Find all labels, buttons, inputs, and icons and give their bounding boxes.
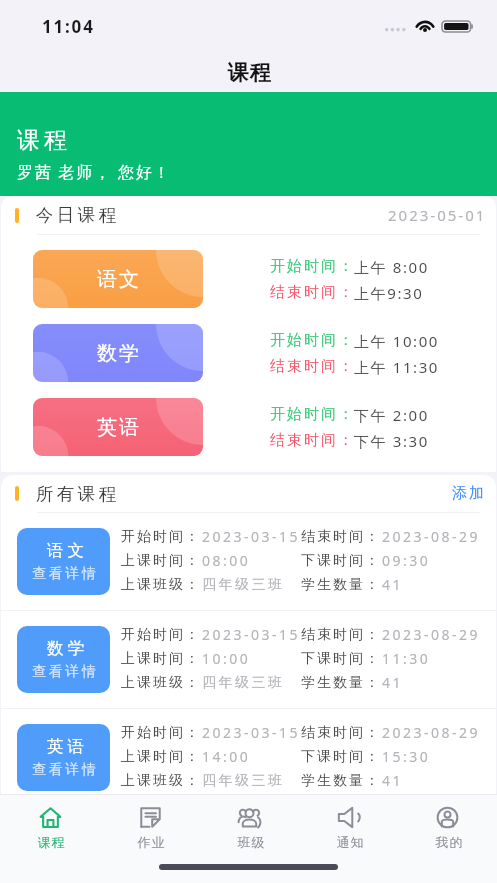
staticText: 结束时间： bbox=[269, 431, 354, 450]
staticText: 下午 2:00 bbox=[354, 405, 429, 425]
staticText: 下午 3:30 bbox=[354, 431, 429, 451]
staticText: 上课班级： bbox=[120, 576, 200, 594]
other: 作业 bbox=[140, 807, 161, 828]
staticText: 上课时间： bbox=[120, 748, 200, 766]
staticText: 开始时间： bbox=[120, 528, 200, 546]
staticText: 添加 bbox=[451, 484, 485, 503]
staticText: 四年级三班 bbox=[202, 772, 285, 790]
button[interactable]: 作业 bbox=[100, 795, 200, 853]
staticText: 上午 10:00 bbox=[354, 331, 440, 351]
staticText: 上课时间： bbox=[120, 650, 200, 668]
staticText: 41 bbox=[382, 673, 404, 692]
button[interactable]: 通知 bbox=[299, 795, 398, 853]
staticText: 开始时间： bbox=[120, 626, 200, 644]
staticText: 结束时间： bbox=[300, 724, 380, 742]
staticText: 08:00 bbox=[202, 551, 251, 570]
other: 班级 bbox=[239, 807, 260, 828]
staticText: 查看详情 bbox=[31, 761, 97, 779]
staticText: 数学 bbox=[96, 341, 140, 366]
staticText: 英语 bbox=[45, 736, 86, 757]
staticText: 10:00 bbox=[202, 649, 251, 668]
staticText: 15:30 bbox=[382, 747, 431, 766]
button[interactable]: 我的 bbox=[398, 795, 497, 853]
staticText: 作业 bbox=[137, 834, 165, 850]
staticText: 上午 11:30 bbox=[354, 357, 440, 377]
staticText: 查看详情 bbox=[31, 663, 97, 681]
button[interactable]: 语文 bbox=[1, 513, 496, 610]
staticText: 上午 8:00 bbox=[354, 257, 429, 277]
staticText: 查看详情 bbox=[31, 565, 97, 583]
staticText: 2023-03-15 bbox=[202, 527, 300, 546]
staticText: 语文 bbox=[96, 267, 140, 292]
staticText: 开始时间： bbox=[269, 405, 354, 424]
staticText: 11:04 bbox=[42, 15, 95, 38]
staticText: 2023-03-15 bbox=[202, 723, 300, 742]
staticText: 英语 bbox=[96, 415, 140, 440]
staticText: 今日课程 bbox=[34, 204, 118, 226]
button[interactable]: 班级 bbox=[200, 795, 299, 853]
staticText: 语文 bbox=[45, 540, 86, 561]
staticText: 上课班级： bbox=[120, 674, 200, 692]
staticText: 下课时间： bbox=[300, 552, 380, 570]
staticText: 开始时间： bbox=[120, 724, 200, 742]
button[interactable]: 数学 bbox=[1, 316, 496, 390]
staticText: 学生数量： bbox=[300, 576, 380, 594]
staticText: 上课时间： bbox=[120, 552, 200, 570]
staticText: 学生数量： bbox=[300, 772, 380, 790]
staticText: 学生数量： bbox=[300, 674, 380, 692]
button[interactable]: 英语 bbox=[1, 709, 496, 794]
staticText: 我的 bbox=[435, 834, 463, 850]
staticText: 结束时间： bbox=[269, 357, 354, 376]
staticText: 所有课程 bbox=[34, 483, 118, 505]
button[interactable]: 添加 bbox=[449, 480, 487, 507]
staticText: 2023-05-01 bbox=[388, 205, 487, 225]
staticText: 2023-08-29 bbox=[382, 527, 481, 546]
staticText: 结束时间： bbox=[300, 626, 380, 644]
staticText: 四年级三班 bbox=[202, 674, 285, 692]
staticText: 班级 bbox=[237, 834, 265, 850]
staticText: 开始时间： bbox=[269, 331, 354, 350]
staticText: 通知 bbox=[336, 834, 364, 850]
staticText: 11:30 bbox=[382, 649, 431, 668]
other: 通知 bbox=[338, 807, 359, 828]
button[interactable]: 数学 bbox=[1, 611, 496, 708]
button[interactable]: 语文 bbox=[1, 242, 496, 316]
other: 我的 bbox=[437, 807, 458, 828]
staticText: 数学 bbox=[45, 638, 86, 659]
staticText: 结束时间： bbox=[300, 528, 380, 546]
staticText: 课程 bbox=[37, 834, 65, 850]
staticText: 下课时间： bbox=[300, 748, 380, 766]
staticText: 14:00 bbox=[202, 747, 251, 766]
staticText: 结束时间： bbox=[269, 283, 354, 302]
staticText: 开始时间： bbox=[269, 257, 354, 276]
staticText: 2023-08-29 bbox=[382, 625, 481, 644]
staticText: 上午9:30 bbox=[354, 283, 424, 303]
staticText: 四年级三班 bbox=[202, 576, 285, 594]
staticText: 09:30 bbox=[382, 551, 431, 570]
staticText: 41 bbox=[382, 575, 404, 594]
staticText: 上课班级： bbox=[120, 772, 200, 790]
staticText: 41 bbox=[382, 771, 404, 790]
staticText: 课程 bbox=[15, 126, 69, 155]
staticText: 罗茜 老师， 您好！ bbox=[17, 161, 172, 183]
staticText: 下课时间： bbox=[300, 650, 380, 668]
staticText: 课程 bbox=[227, 60, 271, 86]
button[interactable]: 英语 bbox=[1, 390, 496, 464]
button[interactable]: 课程 bbox=[0, 795, 100, 853]
other: 课程 bbox=[40, 807, 61, 828]
staticText: 2023-08-29 bbox=[382, 723, 481, 742]
staticText: 2023-03-15 bbox=[202, 625, 300, 644]
